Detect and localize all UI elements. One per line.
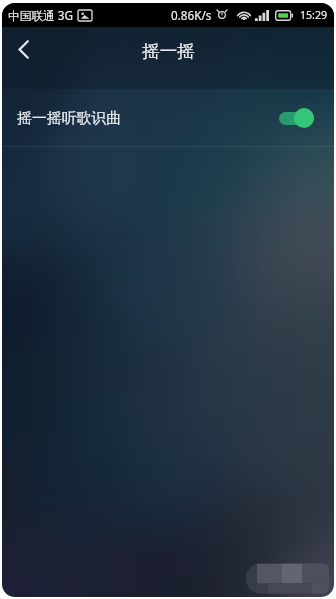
button[interactable]: 摇一摇听歌识曲 [2,89,334,147]
staticText: 15:29 [300,8,328,22]
staticText: 摇一摇听歌识曲 [17,109,122,128]
button[interactable]: Back [2,27,44,72]
staticText: 摇一摇 [142,40,195,62]
staticText: 中国联通 3G [8,7,73,23]
staticText: 0.86K/s [171,7,212,23]
